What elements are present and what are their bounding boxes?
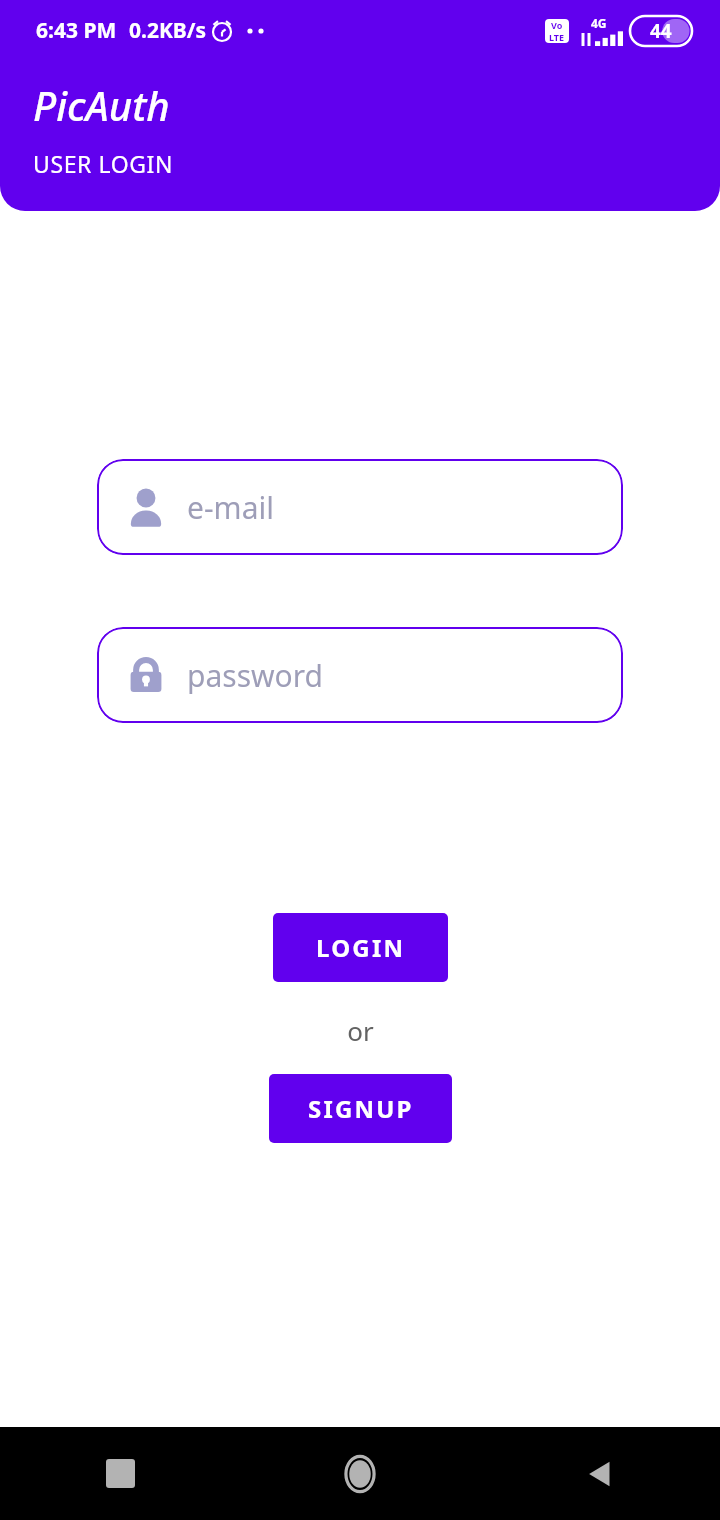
staticText: SIGNUP (308, 1092, 414, 1125)
button[interactable]: SIGNUP (269, 1074, 452, 1143)
staticText: or (347, 1013, 374, 1048)
staticText: LTE (549, 31, 565, 43)
staticText: 4G (591, 15, 607, 31)
staticText: Vo (551, 19, 563, 31)
button[interactable]: LOGIN (273, 913, 448, 982)
staticText: 44 (650, 18, 672, 44)
staticText: 6:43 PM (36, 16, 117, 45)
staticText: password (187, 655, 323, 696)
staticText: PicAuth (33, 78, 170, 132)
button[interactable]: Recents (0, 1427, 240, 1520)
button[interactable]: Back (480, 1427, 720, 1520)
button[interactable]: e-mail (97, 459, 623, 555)
button[interactable]: Home (240, 1427, 480, 1520)
staticText: e-mail (187, 487, 274, 528)
staticText: USER LOGIN (33, 148, 174, 179)
staticText: 0.2KB/s (129, 16, 207, 45)
staticText: LOGIN (316, 931, 406, 964)
button[interactable]: password (97, 627, 623, 723)
